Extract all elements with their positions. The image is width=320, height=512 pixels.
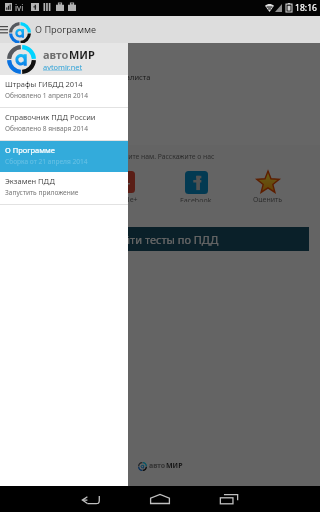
button[interactable]: Home xyxy=(131,486,189,512)
button[interactable]: VK xyxy=(26,168,78,202)
staticText: 18:16 xyxy=(295,2,317,14)
button[interactable]: Facebook xyxy=(170,168,222,202)
staticText: Напишите нам. Расскажите о нас xyxy=(105,152,215,161)
staticText: Версия 2.1 от 21 апреля 2014 года xyxy=(4,97,129,107)
staticText: авто xyxy=(149,461,166,471)
staticText: Обновлено 1 апреля 2014 xyxy=(5,91,89,100)
staticText: ivi xyxy=(15,2,24,13)
staticText: Обновлено 8 января 2014 xyxy=(5,124,89,133)
staticText: g+ xyxy=(117,175,131,190)
staticText: avtomir.net xyxy=(43,62,83,72)
staticText: МИР xyxy=(166,461,183,471)
button[interactable]: Штрафы ГИБДД 2014 xyxy=(0,75,128,107)
staticText: О Программе xyxy=(35,23,97,36)
button[interactable]: авто xyxy=(0,43,128,75)
staticText: Штрафы ГИБДД 2014 xyxy=(5,79,83,89)
staticText: Запустить приложение xyxy=(5,188,79,197)
button[interactable]: Open navigation drawer xyxy=(0,16,10,43)
staticText: Сборка от 21 апреля 2014 xyxy=(5,157,88,166)
button[interactable]: Пройти тесты по ПДД xyxy=(11,227,309,251)
staticText: О Программе xyxy=(5,145,55,155)
button[interactable]: О Программе xyxy=(0,141,128,172)
staticText: VK xyxy=(47,176,59,188)
button[interactable]: Оценить xyxy=(242,168,294,202)
staticText: Подготовлено при участии специалиста xyxy=(4,72,151,82)
button[interactable]: Экзамен ПДД xyxy=(0,172,128,204)
button[interactable]: Recent apps xyxy=(200,486,258,512)
button[interactable]: g+ xyxy=(98,168,150,202)
button[interactable]: Back xyxy=(62,486,120,512)
staticText: МИР xyxy=(69,47,95,62)
staticText: Facebook xyxy=(180,196,212,202)
button[interactable]: Справочник ПДД России xyxy=(0,108,128,140)
staticText: Справочник ПДД России xyxy=(5,112,96,122)
staticText: Вконтакте xyxy=(35,195,70,202)
staticText: Google+ xyxy=(110,195,138,202)
staticText: авто xyxy=(43,47,69,62)
staticText: Пройти тесты по ПДД xyxy=(102,232,219,247)
staticText: Экзамен ПДД xyxy=(5,176,55,186)
staticText: Оценить xyxy=(253,195,283,202)
